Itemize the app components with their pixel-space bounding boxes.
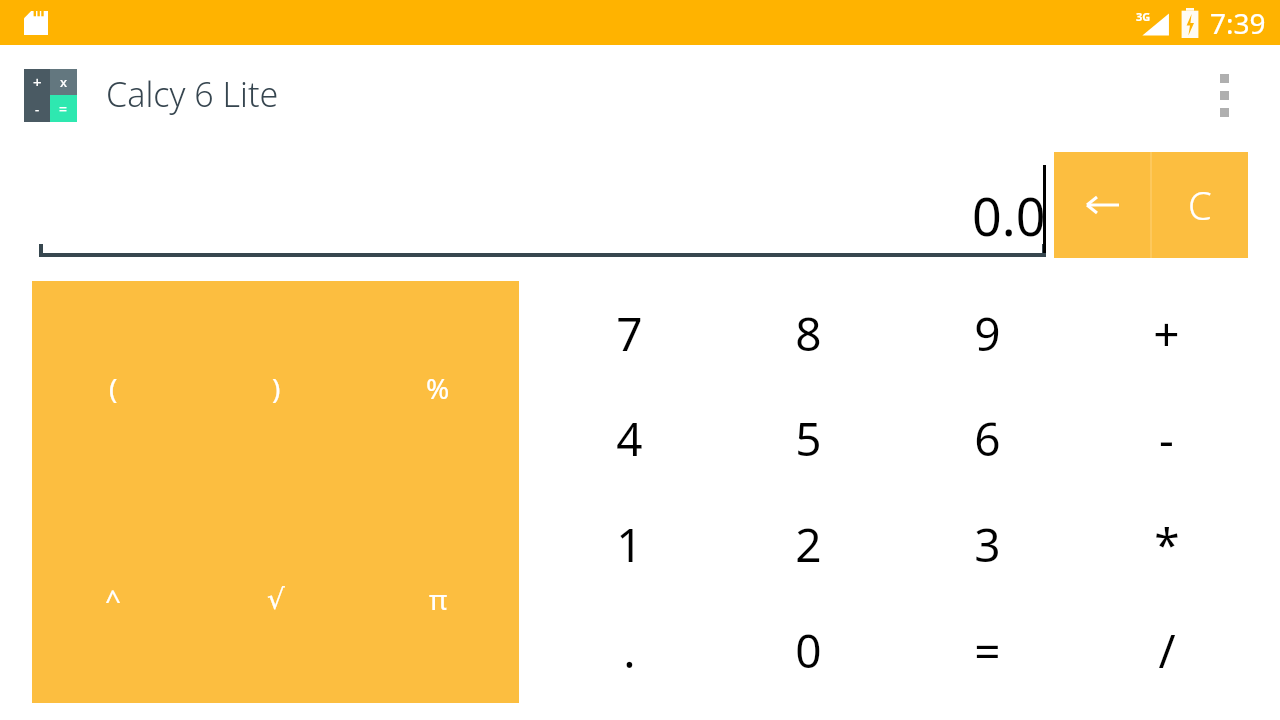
staticText: = [59,99,68,118]
button[interactable]: π [357,576,519,622]
button[interactable]: C [1152,152,1248,258]
staticText: ( [109,369,118,407]
button[interactable]: More options [1200,65,1248,125]
button[interactable]: 4 [540,386,719,491]
staticText: √ [267,583,285,616]
staticText: - [35,100,40,118]
button[interactable]: 7 [540,281,719,386]
staticText: + [33,72,42,92]
staticText: * [1154,513,1180,576]
staticText: = [974,619,1001,682]
button[interactable]: ^ [32,576,195,622]
staticText: 9 [974,302,1001,365]
button[interactable]: % [357,365,519,411]
staticText: C [1188,179,1212,231]
button[interactable]: = [898,597,1077,703]
staticText: 3 [974,513,1001,576]
button[interactable]: 3 [898,491,1077,597]
button[interactable]: - [1077,386,1256,491]
staticText: 2 [795,513,822,576]
staticText: 1 [616,513,643,576]
staticText: + [1153,302,1180,365]
staticText: / [1158,619,1176,682]
staticText: ^ [105,580,122,618]
staticText: 0 [795,619,822,682]
staticText: x [60,73,68,91]
staticText: % [426,369,450,407]
button[interactable]: 0 [719,597,898,703]
staticText: 6 [974,407,1001,470]
staticText: 8 [795,302,822,365]
staticText: ) [272,369,281,407]
button[interactable]: ) [195,365,357,411]
staticText: Calcy 6 Lite [106,71,279,117]
staticText: 0.0 [972,180,1046,251]
button[interactable]: 2 [719,491,898,597]
button[interactable]: 1 [540,491,719,597]
staticText: 7 [616,302,643,365]
button[interactable]: 6 [898,386,1077,491]
staticText: - [1159,407,1174,470]
button[interactable]: 8 [719,281,898,386]
staticText: π [429,580,448,618]
button[interactable]: 0.0 [39,157,1046,263]
button[interactable]: 9 [898,281,1077,386]
button[interactable]: . [540,597,719,703]
staticText: 5 [795,407,822,470]
button[interactable]: ( [32,365,195,411]
staticText: . [623,619,636,682]
button[interactable]: / [1077,597,1256,703]
button[interactable]: √ [195,576,357,622]
staticText: 7:39 [1210,4,1266,42]
staticText: 4 [616,407,643,470]
button[interactable]: * [1077,491,1256,597]
button[interactable]: Backspace [1054,152,1150,258]
button[interactable]: + [1077,281,1256,386]
staticText: 3G [1136,9,1151,24]
button[interactable]: 5 [719,386,898,491]
